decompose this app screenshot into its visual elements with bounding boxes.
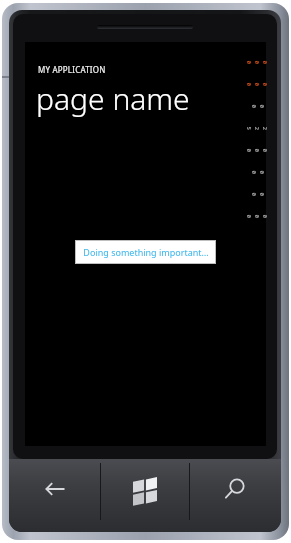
staticText: 0 0 0 [246,82,268,91]
staticText: 0 0 0 0 [246,214,268,223]
staticText: 2 2 5 [246,126,268,135]
staticText: 0 0 [249,104,265,113]
staticText: 0 0 [249,170,265,179]
staticText: 0 0 0 [246,60,268,69]
staticText: page name [36,78,190,119]
staticText: 0 0 0 [246,148,268,157]
staticText: Doing something important… [83,246,209,258]
button[interactable]: Search [190,459,281,532]
button[interactable]: Start [101,459,189,532]
staticText: 0 0 [249,192,265,201]
button[interactable]: Back [9,459,100,532]
button[interactable]: Doing something important… [75,240,216,264]
staticText: MY APPLICATION [38,64,106,75]
